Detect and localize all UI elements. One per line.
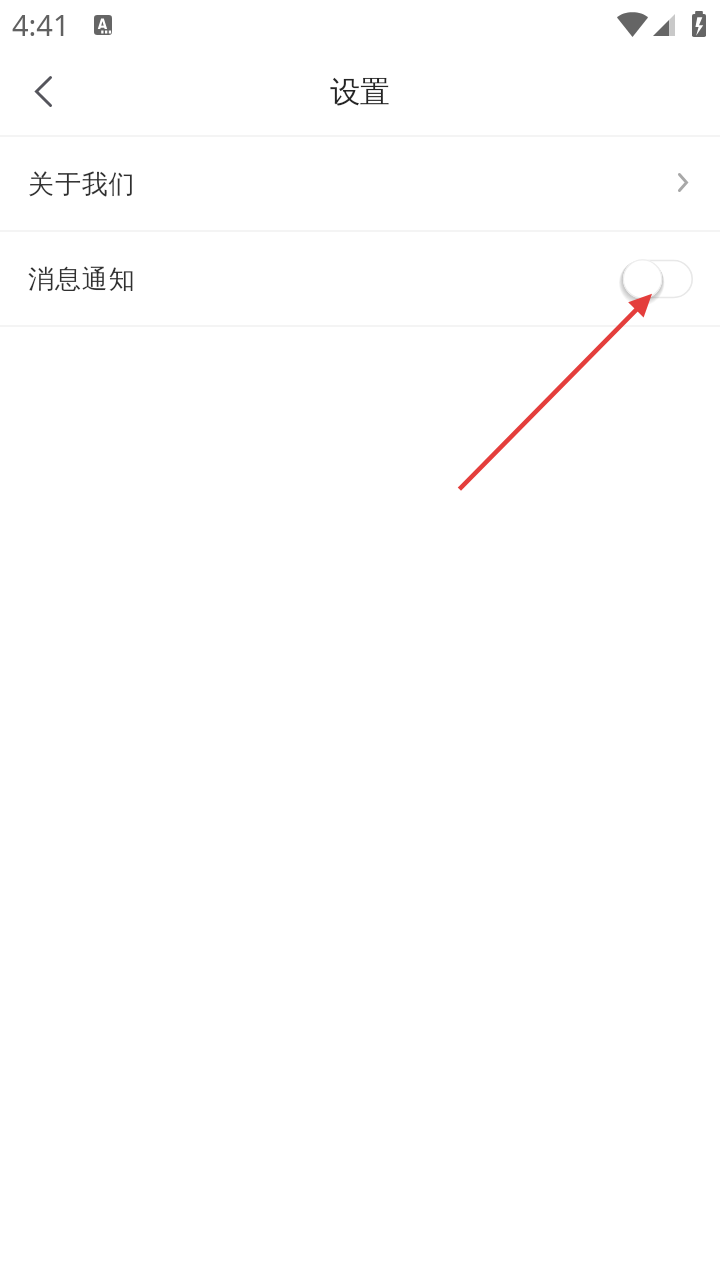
button[interactable]: 消息通知 (0, 232, 720, 325)
staticText: 关于我们 (28, 168, 136, 201)
button[interactable]: 关于我们 (0, 137, 720, 230)
button[interactable]: 消息通知 switch (623, 257, 693, 301)
button[interactable]: Back (0, 50, 84, 135)
staticText: 设置 (330, 73, 390, 111)
staticText: 消息通知 (28, 263, 136, 296)
staticText: 4:41 (12, 5, 70, 44)
